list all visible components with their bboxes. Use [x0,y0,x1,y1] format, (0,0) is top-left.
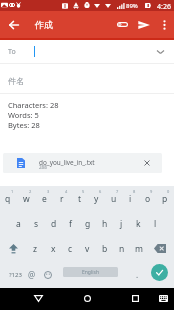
staticText: ?123 [9,271,22,279]
button[interactable]: n [114,236,131,261]
button[interactable]: . [128,261,147,288]
button[interactable]: Recent apps [126,289,144,307]
button[interactable]: Remove attachment [138,153,155,173]
staticText: 288 [39,164,47,170]
staticText: 3 [47,189,50,194]
button[interactable]: Back [0,11,27,38]
button[interactable]: 6 [89,186,106,211]
button[interactable]: 1 [0,186,18,211]
button[interactable]: 2 [18,186,36,211]
button[interactable]: g [80,211,97,236]
button[interactable]: v [80,236,97,261]
staticText: Bytes: 28 [8,120,40,130]
staticText: n [119,243,125,255]
staticText: o [145,193,151,205]
button[interactable]: More options [155,11,174,38]
button[interactable]: m [131,236,148,261]
button[interactable]: Shift [0,236,27,261]
staticText: @ [28,269,36,280]
staticText: z [33,243,37,255]
button[interactable]: 3 [36,186,54,211]
staticText: i [129,193,132,205]
button[interactable]: ?123 [1,261,29,288]
button[interactable]: l [148,211,165,236]
staticText: 5 [82,189,85,194]
staticText: s [34,218,39,230]
staticText: l [154,218,157,230]
staticText: 1 [11,189,14,194]
staticText: b [102,243,108,255]
staticText: To [8,47,16,57]
button[interactable]: 0 [157,186,174,211]
staticText: e [42,193,47,205]
button[interactable]: a [10,211,28,236]
staticText: f [69,218,72,230]
button[interactable]: Emoji [38,261,57,288]
button[interactable]: f [63,211,80,236]
staticText: j [120,218,123,230]
staticText: 6 [99,189,102,194]
button[interactable]: 件名 [0,64,174,93]
button[interactable]: Home [78,289,96,307]
staticText: Characters: 28 [8,100,59,110]
staticText: x [51,243,56,255]
staticText: 作成 [35,19,53,30]
staticText: 件名 [8,76,24,86]
button[interactable]: b [97,236,114,261]
staticText: Words: 5 [8,110,39,120]
staticText: m [135,243,143,255]
button[interactable]: do_you_live_in_.txt [3,153,162,173]
staticText: 4:26 [157,2,171,12]
staticText: y [94,193,99,205]
button[interactable]: x [45,236,63,261]
staticText: r [60,193,64,205]
staticText: t [78,193,82,205]
button[interactable]: s [28,211,46,236]
button[interactable]: 8 [123,186,140,211]
button[interactable]: Back [29,289,47,307]
staticText: . [136,269,139,280]
staticText: w [23,193,30,205]
button[interactable]: 5 [72,186,89,211]
button[interactable]: 7 [106,186,123,211]
staticText: 8 [133,189,136,194]
button[interactable]: To [0,40,174,63]
button[interactable]: Send [133,11,155,38]
button[interactable]: c [63,236,80,261]
button[interactable]: 4 [54,186,72,211]
staticText: 9 [150,189,153,194]
staticText: g [85,218,91,230]
staticText: 0 [167,189,170,194]
button[interactable]: d [46,211,63,236]
other: Expand recipients [150,40,170,63]
staticText: 7 [116,189,119,194]
staticText: k [136,218,141,230]
button[interactable]: k [131,211,148,236]
button[interactable]: Attach file [111,11,133,38]
button[interactable]: z [27,236,45,261]
button[interactable]: j [114,211,131,236]
staticText: English [82,269,100,276]
staticText: q [5,193,11,205]
button[interactable]: At sign [22,261,41,288]
staticText: 2 [29,189,32,194]
staticText: v [85,243,90,255]
button[interactable]: English [63,267,118,277]
staticText: 4 [65,189,68,194]
staticText: u [111,193,117,205]
staticText: p [162,193,168,205]
staticText: c [68,243,73,255]
staticText: 89% [126,2,138,10]
staticText: a [16,218,21,230]
button[interactable]: Hide keyboard [154,289,172,307]
staticText: do_you_live_in_.txt [39,158,95,167]
button[interactable]: Done [151,264,168,281]
button[interactable]: h [97,211,114,236]
staticText: h [102,218,108,230]
button[interactable]: 9 [140,186,157,211]
staticText: d [51,218,57,230]
button[interactable]: Backspace [148,236,174,261]
